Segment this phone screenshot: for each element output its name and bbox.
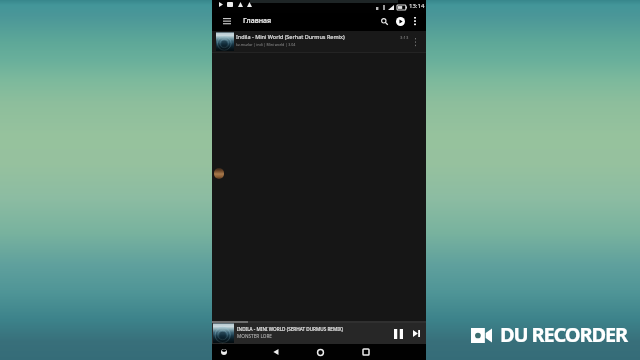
button[interactable]: Next track [409, 323, 424, 344]
button[interactable]: More options [409, 12, 421, 30]
button[interactable]: INDILA - MINI WORLD (SERHAT DURMUS REMIX… [212, 323, 426, 344]
staticText: 3:13 [400, 35, 409, 41]
button[interactable]: Assistant [216, 344, 232, 360]
button[interactable]: Navigation menu [219, 13, 235, 31]
button[interactable]: Indila - Mini World (Serhat Durmus Remix… [212, 31, 426, 52]
button[interactable]: Play [392, 12, 409, 30]
button[interactable]: Floating control [214, 168, 224, 179]
staticText: INDILA - MINI WORLD (SERHAT DURMUS REMIX… [237, 326, 343, 332]
button[interactable]: Recent apps [358, 344, 374, 360]
staticText: MONSTER LORE [237, 333, 272, 339]
staticText: Indila - Mini World (Serhat Durmus Remix… [236, 33, 345, 40]
staticText: Главная [243, 16, 272, 26]
button[interactable]: Pause [390, 323, 406, 344]
staticText: kz-muzlar | indi | Mini world | 3.04 [236, 42, 296, 47]
button[interactable]: Home [312, 344, 328, 360]
button[interactable]: Back [268, 344, 284, 360]
button[interactable]: Track options [410, 31, 420, 52]
staticText: 13:14 [409, 2, 425, 10]
staticText: DU RECORDER [500, 321, 627, 348]
button[interactable]: Search [376, 12, 392, 30]
